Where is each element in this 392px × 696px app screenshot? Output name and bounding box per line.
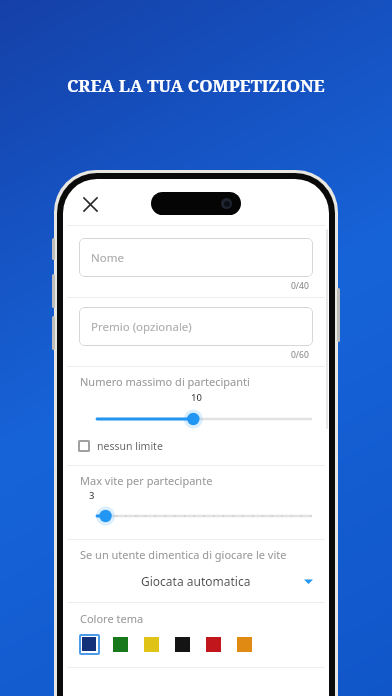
staticText: 0/60 — [291, 349, 309, 361]
button[interactable]: Nome — [79, 238, 313, 277]
button[interactable]: Slider — [63, 409, 329, 429]
staticText: 3 — [89, 489, 95, 502]
button[interactable]: Colore 2 — [109, 633, 131, 655]
button[interactable]: nessun limite — [78, 435, 329, 457]
button[interactable]: Colore 5 — [202, 633, 224, 655]
button[interactable]: Premio (opzionale) — [79, 307, 313, 346]
button[interactable]: Giocata automatica — [63, 568, 329, 594]
staticText: Premio (opzionale) — [91, 319, 192, 335]
staticText: 10 — [191, 391, 202, 404]
button[interactable]: Colore 6 — [233, 633, 255, 655]
staticText: 0/40 — [291, 280, 309, 292]
staticText: Se un utente dimentica di giocare le vit… — [80, 547, 287, 562]
staticText: Numero massimo di partecipanti — [80, 374, 250, 389]
button[interactable]: Colore 3 — [140, 633, 162, 655]
staticText: Max vite per partecipante — [80, 473, 213, 488]
button[interactable]: Colore 4 — [171, 633, 193, 655]
staticText: Giocata automatica — [141, 573, 251, 589]
staticText: CREA LA TUA COMPETIZIONE — [67, 74, 325, 97]
staticText: Colore tema — [80, 611, 144, 626]
button[interactable]: Colore 1 — [78, 633, 100, 655]
staticText: Nome — [91, 250, 124, 266]
staticText: nessun limite — [97, 439, 163, 453]
button[interactable]: Slider — [63, 506, 329, 526]
button[interactable]: Chiudi — [73, 187, 107, 221]
